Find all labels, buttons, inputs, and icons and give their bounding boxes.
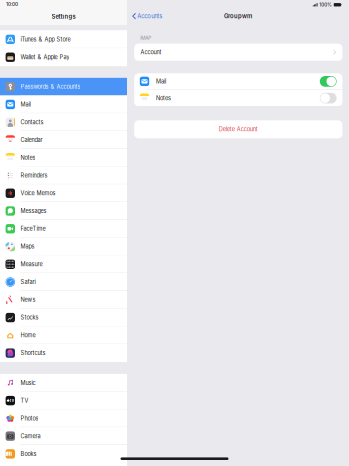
staticText: News xyxy=(20,296,35,303)
button[interactable]: Camera xyxy=(0,427,127,445)
button[interactable]: Home xyxy=(0,326,127,344)
button[interactable]: Safari xyxy=(0,273,127,291)
button[interactable]: Mail xyxy=(134,73,342,89)
staticText: Accounts xyxy=(137,13,162,20)
staticText: Groupwm xyxy=(224,13,252,20)
button[interactable]: News xyxy=(0,291,127,309)
button[interactable]: Reminders xyxy=(0,167,127,184)
staticText: Mail xyxy=(156,78,166,85)
button[interactable]: Contacts xyxy=(0,113,127,131)
staticText: Photos xyxy=(20,415,38,422)
button[interactable]: Photos xyxy=(0,409,127,427)
button[interactable]: Messages xyxy=(0,202,127,220)
staticText: 10:00 xyxy=(6,2,18,7)
staticText: Camera xyxy=(20,433,40,439)
staticText: Music xyxy=(20,379,35,386)
staticText: Books xyxy=(20,450,36,457)
button[interactable]: Calendar xyxy=(0,131,127,149)
staticText: Settings xyxy=(51,13,75,20)
staticText: Mail xyxy=(20,101,30,108)
staticText: Calendar xyxy=(20,137,42,143)
staticText: Home xyxy=(20,332,35,339)
button[interactable]: Books xyxy=(0,445,127,463)
button[interactable]: Accounts xyxy=(127,9,162,23)
staticText: Voice Memos xyxy=(20,190,55,197)
staticText: Reminders xyxy=(20,172,47,179)
button[interactable]: Account xyxy=(134,44,342,61)
staticText: IMAP xyxy=(140,35,151,41)
staticText: Delete Account xyxy=(219,126,258,133)
staticText: Account xyxy=(141,49,162,56)
button[interactable]: Maps xyxy=(0,238,127,255)
staticText: Measure xyxy=(20,261,42,268)
button[interactable]: Music xyxy=(0,374,127,392)
button[interactable]: Voice Memos xyxy=(0,184,127,202)
button[interactable]: Stocks xyxy=(0,309,127,326)
button[interactable]: Shortcuts xyxy=(0,344,127,362)
staticText: TV xyxy=(20,397,28,404)
staticText: Passwords & Accounts xyxy=(20,83,80,90)
button[interactable]: iTunes & App Store xyxy=(0,30,127,48)
staticText: Shortcuts xyxy=(20,350,45,356)
staticText: 100% xyxy=(319,2,332,8)
staticText: Notes xyxy=(20,154,35,161)
staticText: tv xyxy=(10,398,14,403)
staticText: Wallet & Apple Pay xyxy=(20,54,69,61)
staticText: Messages xyxy=(20,208,46,214)
staticText: iTunes & App Store xyxy=(20,36,70,43)
button[interactable]: Notes xyxy=(134,90,342,106)
button[interactable]: FaceTime xyxy=(0,220,127,238)
staticText: Maps xyxy=(20,243,34,250)
staticText: FaceTime xyxy=(20,225,45,232)
button[interactable]: Measure xyxy=(0,255,127,273)
staticText: Notes xyxy=(156,95,171,101)
staticText: Contacts xyxy=(20,119,43,126)
button[interactable]: Wallet & Apple Pay xyxy=(0,48,127,66)
button[interactable]: Mail xyxy=(0,96,127,113)
staticText: Stocks xyxy=(20,314,38,321)
button[interactable]: tv xyxy=(0,392,127,409)
button[interactable]: Passwords & Accounts xyxy=(0,78,127,96)
staticText: Safari xyxy=(20,279,35,285)
button[interactable]: Delete Account xyxy=(134,120,342,138)
button[interactable]: Notes xyxy=(0,149,127,167)
